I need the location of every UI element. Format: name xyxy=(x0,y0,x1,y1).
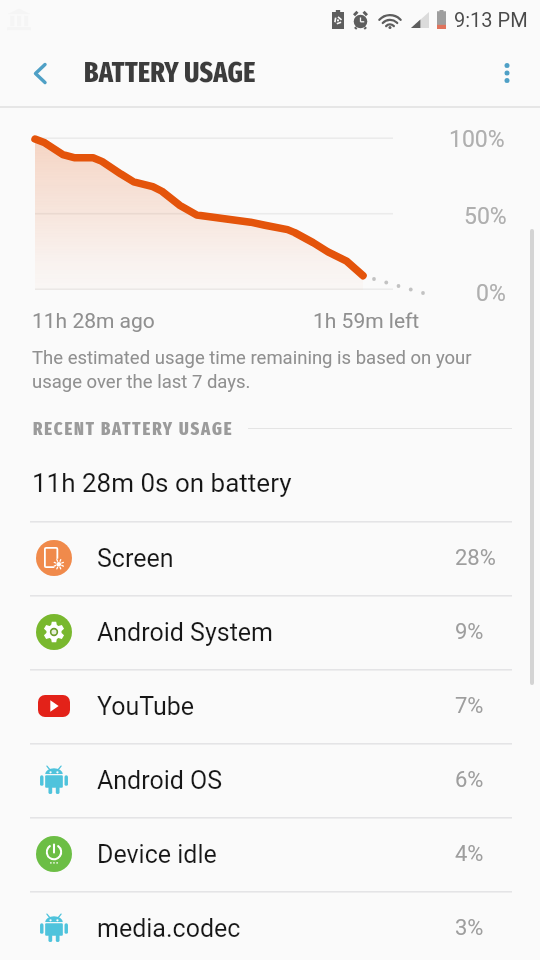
staticText: BATTERY USAGE xyxy=(84,56,256,90)
staticText: Device idle xyxy=(97,840,217,869)
staticText: 9% xyxy=(455,619,484,645)
staticText: Screen xyxy=(97,544,174,573)
staticText: 11h 28m ago xyxy=(32,309,155,334)
staticText: 28% xyxy=(455,545,496,571)
staticText: YouTube xyxy=(97,692,195,721)
button[interactable]: Android OS xyxy=(0,743,540,817)
button[interactable]: More options xyxy=(483,49,531,97)
staticText: 1h 59m left xyxy=(313,309,420,334)
staticText: 11h 28m 0s on battery xyxy=(32,468,292,498)
button[interactable]: Navigate up xyxy=(14,47,66,99)
button[interactable]: Screen xyxy=(0,521,540,595)
button[interactable]: Device idle xyxy=(0,817,540,891)
staticText: media.codec xyxy=(97,914,241,943)
staticText: 0% xyxy=(476,280,506,307)
staticText: 50% xyxy=(464,203,507,230)
staticText: 7% xyxy=(455,693,484,719)
staticText: 6% xyxy=(455,767,484,793)
button[interactable]: media.codec xyxy=(0,891,540,960)
staticText: The estimated usage time remaining is ba… xyxy=(32,347,487,393)
staticText: 9:13 PM xyxy=(454,8,528,31)
staticText: 3% xyxy=(455,915,484,941)
button[interactable]: YouTube xyxy=(0,669,540,743)
staticText: Android System xyxy=(97,618,274,647)
staticText: RECENT BATTERY USAGE xyxy=(33,418,234,440)
button[interactable]: Android System xyxy=(0,595,540,669)
staticText: 4% xyxy=(455,841,484,867)
staticText: 100% xyxy=(449,126,505,153)
staticText: Android OS xyxy=(97,766,223,795)
